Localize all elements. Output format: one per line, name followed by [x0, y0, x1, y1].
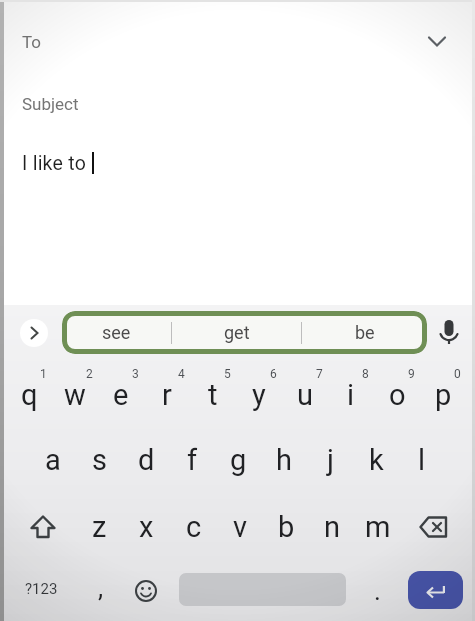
staticText: I like to: [22, 152, 92, 175]
staticText: 9: [408, 367, 415, 381]
staticText: v: [233, 510, 248, 544]
button[interactable]: v: [217, 494, 263, 559]
button[interactable]: p: [420, 362, 466, 427]
staticText: l: [418, 443, 426, 477]
staticText: q: [21, 378, 38, 412]
staticText: h: [276, 443, 292, 477]
button[interactable]: o: [374, 362, 420, 427]
button[interactable]: .: [352, 556, 402, 621]
button[interactable]: i: [328, 362, 374, 427]
staticText: ,: [98, 573, 104, 603]
button[interactable]: [434, 318, 464, 348]
staticText: e: [113, 378, 129, 412]
staticText: o: [389, 378, 406, 412]
button[interactable]: b: [263, 494, 309, 559]
staticText: z: [92, 510, 107, 544]
button[interactable]: be: [302, 311, 427, 354]
staticText: see: [102, 322, 131, 343]
button[interactable]: a: [29, 427, 76, 492]
staticText: b: [278, 510, 295, 544]
button[interactable]: j: [307, 427, 353, 492]
staticText: s: [92, 443, 107, 477]
staticText: j: [327, 443, 334, 477]
button[interactable]: x: [123, 494, 170, 559]
staticText: w: [64, 378, 86, 412]
staticText: 2: [86, 367, 93, 381]
staticText: 1: [40, 367, 47, 381]
button[interactable]: q: [7, 362, 52, 427]
staticText: get: [224, 322, 250, 343]
staticText: g: [230, 443, 247, 477]
button[interactable]: y: [236, 362, 282, 427]
button[interactable]: u: [282, 362, 328, 427]
staticText: .: [374, 576, 381, 606]
button[interactable]: ,: [75, 556, 127, 621]
staticText: t: [208, 378, 218, 412]
staticText: Subject: [22, 94, 79, 114]
staticText: f: [187, 443, 198, 477]
staticText: be: [355, 322, 375, 343]
staticText: n: [324, 510, 341, 544]
staticText: 4: [178, 367, 185, 381]
button[interactable]: ?123: [7, 556, 75, 621]
button[interactable]: [20, 319, 48, 347]
staticText: 5: [224, 367, 231, 381]
button[interactable]: d: [123, 427, 169, 492]
button[interactable]: c: [170, 494, 217, 559]
staticText: 6: [270, 367, 277, 381]
button[interactable]: I like to: [0, 141, 475, 185]
staticText: i: [347, 378, 355, 412]
button[interactable]: [401, 494, 466, 559]
staticText: 0: [454, 367, 461, 381]
staticText: 3: [132, 367, 139, 381]
staticText: 7: [316, 367, 323, 381]
staticText: ?123: [25, 580, 58, 598]
button[interactable]: k: [353, 427, 399, 492]
staticText: To: [22, 32, 42, 52]
button[interactable]: l: [399, 427, 445, 492]
staticText: m: [365, 510, 391, 544]
button[interactable]: Subject: [0, 82, 475, 126]
button[interactable]: w: [52, 362, 98, 427]
staticText: y: [252, 378, 266, 412]
staticText: a: [45, 443, 61, 477]
staticText: u: [297, 378, 313, 412]
staticText: c: [186, 510, 202, 544]
button[interactable]: [7, 494, 76, 559]
staticText: 8: [362, 367, 369, 381]
button[interactable]: t: [190, 362, 236, 427]
staticText: d: [138, 443, 155, 477]
staticText: x: [139, 510, 154, 544]
button[interactable]: s: [76, 427, 123, 492]
button[interactable]: g: [215, 427, 261, 492]
button[interactable]: [408, 571, 463, 609]
button[interactable]: r: [144, 362, 190, 427]
staticText: p: [435, 378, 452, 412]
button[interactable]: get: [172, 311, 301, 354]
button[interactable]: z: [76, 494, 123, 559]
button[interactable]: n: [309, 494, 355, 559]
button[interactable]: see: [62, 311, 171, 354]
button[interactable]: m: [355, 494, 401, 559]
button[interactable]: [123, 556, 168, 621]
staticText: k: [369, 443, 384, 477]
button[interactable]: f: [169, 427, 215, 492]
staticText: r: [162, 378, 172, 412]
button[interactable]: To: [0, 20, 475, 64]
button[interactable]: h: [261, 427, 307, 492]
button[interactable]: e: [98, 362, 144, 427]
